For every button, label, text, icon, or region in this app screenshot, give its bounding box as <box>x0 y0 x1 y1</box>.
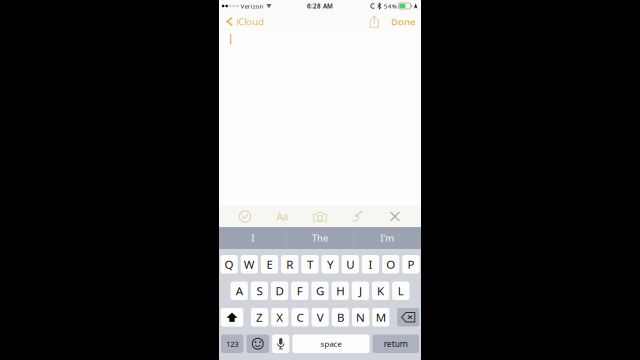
button[interactable]: return <box>372 334 419 353</box>
staticText: H <box>336 283 344 298</box>
button[interactable]: F <box>291 281 308 300</box>
button[interactable]: A <box>231 281 248 300</box>
staticText: Z <box>256 309 263 325</box>
staticText: M <box>376 309 386 325</box>
button[interactable]: M <box>372 308 389 326</box>
staticText: N <box>356 309 365 325</box>
staticText: R <box>286 256 293 272</box>
button[interactable]: I <box>362 255 379 273</box>
button[interactable]: V <box>312 308 329 326</box>
button[interactable]: J <box>352 281 369 300</box>
button[interactable]: U <box>342 255 359 273</box>
staticText: V <box>317 309 324 325</box>
button[interactable]: O <box>382 255 399 273</box>
staticText: A <box>236 283 243 298</box>
button[interactable]: Markup <box>339 206 376 227</box>
button[interactable]: H <box>332 281 349 300</box>
staticText: D <box>276 283 284 298</box>
staticText: F <box>297 283 303 298</box>
staticText: I'm <box>380 232 394 244</box>
button[interactable]: I <box>219 227 286 249</box>
button[interactable]: iCloud <box>219 12 269 31</box>
button[interactable]: Y <box>321 255 339 273</box>
staticText: T <box>307 256 313 272</box>
staticText: 6:28 AM <box>307 2 333 10</box>
button[interactable]: Z <box>251 308 268 326</box>
staticText: P <box>407 256 414 272</box>
staticText: 123 <box>226 339 238 349</box>
staticText: C <box>296 309 303 325</box>
staticText: X <box>276 309 283 325</box>
button[interactable]: W <box>241 255 258 273</box>
button[interactable]: L <box>392 281 409 300</box>
staticText: E <box>266 256 272 272</box>
staticText: W <box>244 256 255 272</box>
button[interactable]: B <box>332 308 349 326</box>
button[interactable]: Emoji <box>246 334 269 353</box>
staticText: I <box>251 232 254 244</box>
button[interactable]: Hide keyboard <box>376 206 414 227</box>
button[interactable]: The <box>286 227 354 249</box>
staticText: Verizon <box>241 2 264 10</box>
button[interactable]: T <box>301 255 318 273</box>
staticText: L <box>398 283 404 298</box>
staticText: Done <box>391 15 416 28</box>
button[interactable]: Insert photo <box>301 206 339 227</box>
button[interactable]: G <box>311 281 329 300</box>
button[interactable]: Q <box>220 255 238 273</box>
button[interactable]: Dictate <box>272 334 289 353</box>
button[interactable]: Delete <box>397 308 419 326</box>
button[interactable]: X <box>271 308 288 326</box>
button[interactable]: space <box>292 334 369 353</box>
staticText: O <box>386 256 395 272</box>
staticText: K <box>377 283 384 298</box>
staticText: iCloud <box>236 15 264 28</box>
button[interactable]: K <box>372 281 389 300</box>
staticText: space <box>320 338 341 349</box>
button[interactable]: C <box>291 308 309 326</box>
button[interactable]: E <box>261 255 278 273</box>
button[interactable]: N <box>352 308 369 326</box>
button[interactable]: Text formatting <box>264 206 301 227</box>
staticText: Y <box>327 256 333 272</box>
staticText: U <box>346 256 354 272</box>
button[interactable]: D <box>271 281 288 300</box>
staticText: B <box>337 309 344 325</box>
button[interactable]: P <box>402 255 419 273</box>
staticText: The <box>312 232 328 244</box>
staticText: I <box>368 256 372 272</box>
button[interactable]: R <box>281 255 298 273</box>
button[interactable]: Done <box>384 12 421 31</box>
button[interactable]: Share <box>365 12 384 31</box>
staticText: Q <box>225 256 234 272</box>
staticText: S <box>256 283 262 298</box>
staticText: Aa <box>276 210 288 223</box>
button[interactable]: Checklist <box>226 206 264 227</box>
staticText: J <box>359 283 362 298</box>
button[interactable]: Shift <box>221 308 243 326</box>
staticText: 54% <box>384 2 397 10</box>
staticText: return <box>384 338 408 349</box>
button[interactable]: I'm <box>354 227 421 249</box>
button[interactable]: S <box>251 281 268 300</box>
staticText: G <box>316 283 324 298</box>
button[interactable]: Numbers <box>221 334 243 353</box>
